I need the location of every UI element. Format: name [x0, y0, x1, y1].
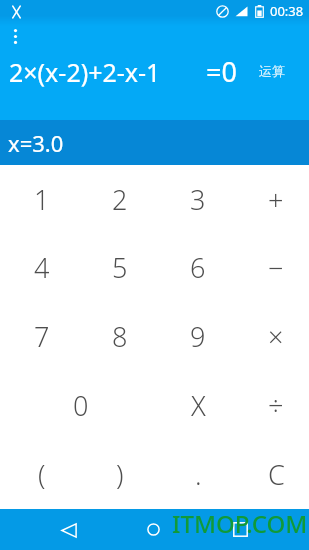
staticText: 运算	[259, 63, 285, 79]
staticText: 2	[112, 181, 128, 218]
button[interactable]: ×	[237, 302, 309, 371]
staticText: 6	[190, 249, 206, 286]
button[interactable]: 5	[81, 233, 159, 302]
button[interactable]: −	[237, 233, 309, 302]
button[interactable]: Back	[48, 510, 89, 550]
staticText: C	[268, 456, 285, 493]
staticText: 1	[34, 181, 50, 218]
staticText: )	[116, 456, 124, 493]
button[interactable]: 3	[159, 165, 237, 233]
button[interactable]: 运算	[254, 59, 290, 83]
staticText: ITMOP.COM	[172, 507, 308, 540]
button[interactable]: +	[237, 165, 309, 233]
button[interactable]: 2	[81, 165, 159, 233]
staticText: ÷	[268, 387, 284, 424]
button[interactable]: Home	[133, 509, 174, 550]
button[interactable]: 7	[2, 302, 81, 371]
staticText: (	[38, 456, 46, 493]
button[interactable]: ÷	[237, 371, 309, 440]
staticText: 00:38	[270, 2, 304, 20]
button[interactable]: 9	[159, 302, 237, 371]
staticText: 4	[34, 249, 50, 286]
button[interactable]: C	[237, 440, 309, 509]
button[interactable]: More options	[5, 26, 25, 46]
button[interactable]: 4	[2, 233, 81, 302]
staticText: 2×(x-2)+2-x-1	[9, 55, 161, 89]
button[interactable]: 1	[2, 165, 81, 233]
staticText: 0	[73, 387, 89, 424]
button[interactable]: )	[81, 440, 159, 509]
button[interactable]: .	[159, 440, 237, 509]
button[interactable]: 6	[159, 233, 237, 302]
staticText: 7	[34, 318, 50, 355]
staticText: 3	[190, 181, 206, 218]
staticText: +	[268, 181, 284, 218]
staticText: x=3.0	[8, 128, 64, 158]
staticText: .	[195, 456, 202, 493]
button[interactable]: 8	[81, 302, 159, 371]
button[interactable]: Recents	[220, 509, 261, 550]
staticText: 8	[112, 318, 128, 355]
button[interactable]: Close	[6, 2, 26, 22]
staticText: ×	[268, 318, 284, 355]
button[interactable]: 0	[2, 371, 159, 440]
staticText: 9	[190, 318, 206, 355]
staticText: =0	[206, 53, 237, 90]
button[interactable]: (	[2, 440, 81, 509]
button[interactable]: X	[159, 371, 237, 440]
staticText: 5	[112, 249, 128, 286]
staticText: X	[191, 387, 206, 424]
staticText: −	[268, 249, 284, 286]
